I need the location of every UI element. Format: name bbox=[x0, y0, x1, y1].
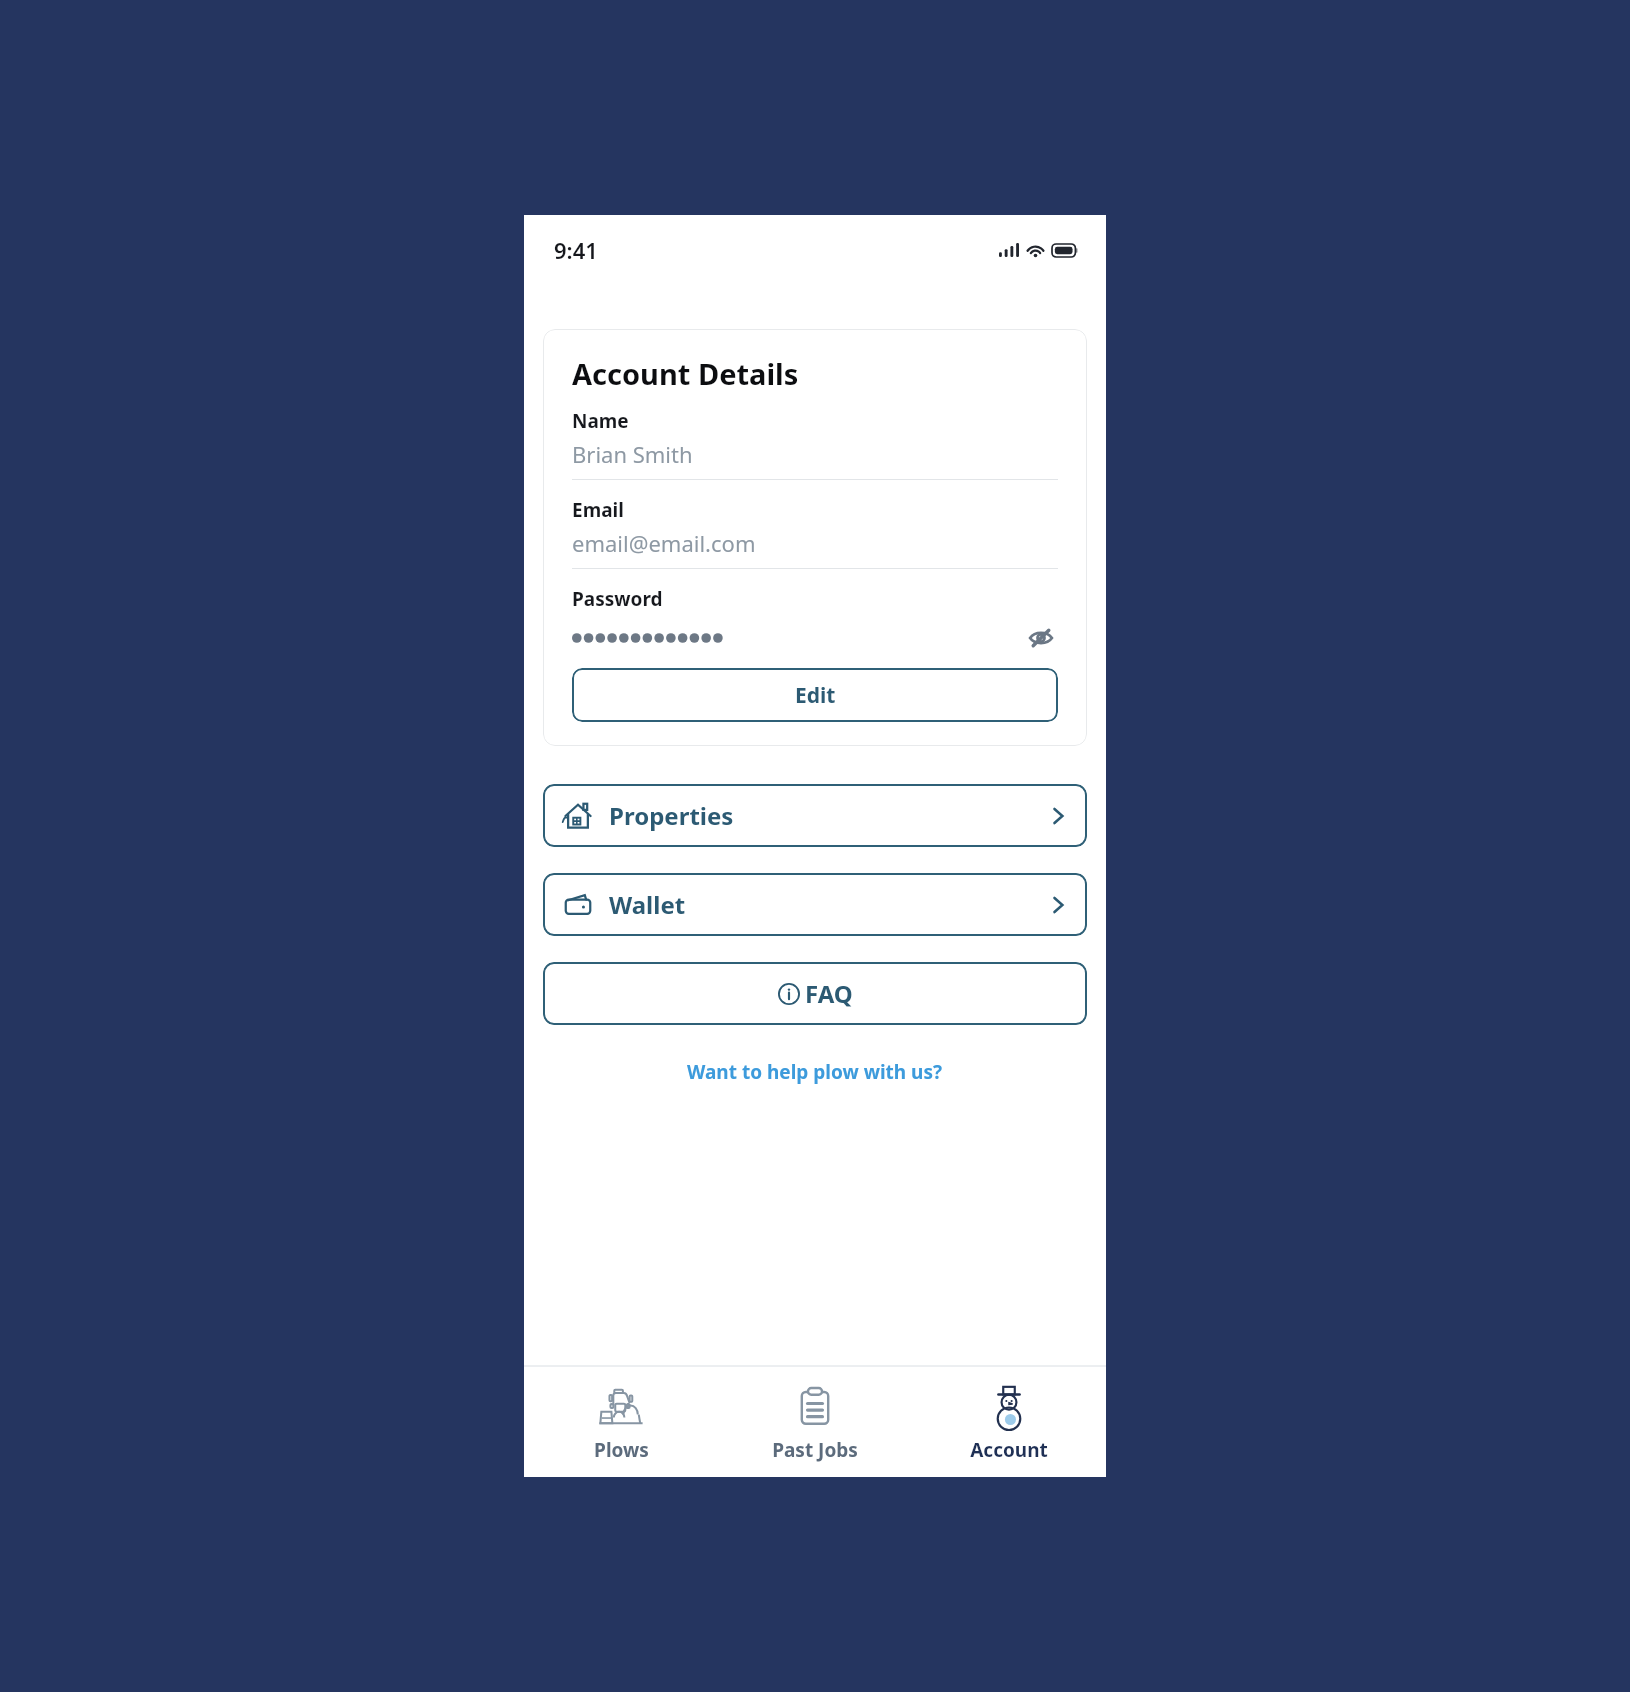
staticText: Past Jobs bbox=[772, 1437, 858, 1463]
button[interactable]: Wallet bbox=[543, 873, 1087, 936]
staticText: Wallet bbox=[609, 888, 686, 921]
staticText: Edit bbox=[795, 681, 836, 710]
staticText: FAQ bbox=[805, 977, 853, 1010]
button[interactable]: Plows bbox=[524, 1367, 718, 1477]
button[interactable]: Past Jobs bbox=[718, 1367, 912, 1477]
staticText: Account bbox=[970, 1437, 1048, 1463]
staticText: Properties bbox=[609, 799, 734, 832]
staticText: Name bbox=[572, 408, 629, 434]
staticText: Brian Smith bbox=[572, 439, 693, 469]
staticText: Plows bbox=[594, 1437, 649, 1463]
button[interactable]: Account bbox=[912, 1367, 1106, 1477]
staticText: Account Details bbox=[572, 354, 799, 393]
button[interactable]: Want to help plow with us? bbox=[524, 1059, 1106, 1085]
staticText: 9:41 bbox=[554, 235, 598, 265]
staticText: email@email.com bbox=[572, 528, 756, 558]
staticText: Want to help plow with us? bbox=[687, 1059, 943, 1085]
button[interactable]: Edit bbox=[572, 668, 1058, 722]
staticText: Email bbox=[572, 497, 624, 523]
button[interactable]: FAQ bbox=[543, 962, 1087, 1025]
staticText: Password bbox=[572, 586, 663, 612]
button[interactable]: Properties bbox=[543, 784, 1087, 847]
button[interactable]: Show password bbox=[1024, 621, 1058, 655]
